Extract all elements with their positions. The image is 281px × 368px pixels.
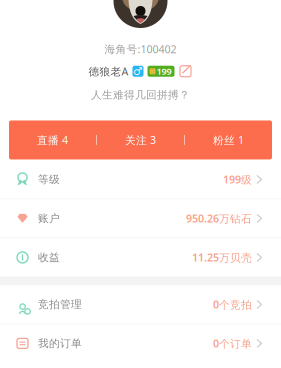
- staticText: 我的订单: [38, 337, 82, 350]
- staticText: 关注 3: [125, 133, 156, 147]
- button[interactable]: Edit profile: [178, 64, 192, 78]
- button[interactable]: 粉丝 1: [185, 120, 272, 159]
- button[interactable]: 账户: [0, 199, 281, 237]
- button[interactable]: 我的订单: [0, 324, 281, 362]
- staticText: 950.26万钻石: [186, 211, 252, 226]
- staticText: 0个订单: [213, 336, 252, 351]
- button[interactable]: 直播 4: [9, 120, 96, 159]
- staticText: ♂: [133, 65, 143, 77]
- staticText: 11.25万贝壳: [192, 250, 252, 265]
- staticText: 人生难得几回拼搏？: [91, 88, 190, 101]
- button[interactable]: 竞拍管理: [0, 285, 281, 323]
- staticText: 竞拍管理: [38, 298, 82, 311]
- staticText: 海角号:100402: [104, 42, 176, 56]
- staticText: 德狼老A: [88, 64, 128, 78]
- staticText: 粉丝 1: [213, 133, 244, 147]
- staticText: 199级: [223, 172, 252, 187]
- staticText: 199: [156, 65, 171, 77]
- button[interactable]: 等级: [0, 160, 281, 198]
- button[interactable]: 关注 3: [97, 120, 184, 159]
- staticText: 0个竞拍: [213, 297, 252, 312]
- staticText: 收益: [38, 251, 60, 264]
- staticText: 等级: [38, 173, 60, 186]
- staticText: 账户: [38, 212, 60, 225]
- button[interactable]: 收益: [0, 238, 281, 276]
- staticText: 直播 4: [37, 133, 68, 147]
